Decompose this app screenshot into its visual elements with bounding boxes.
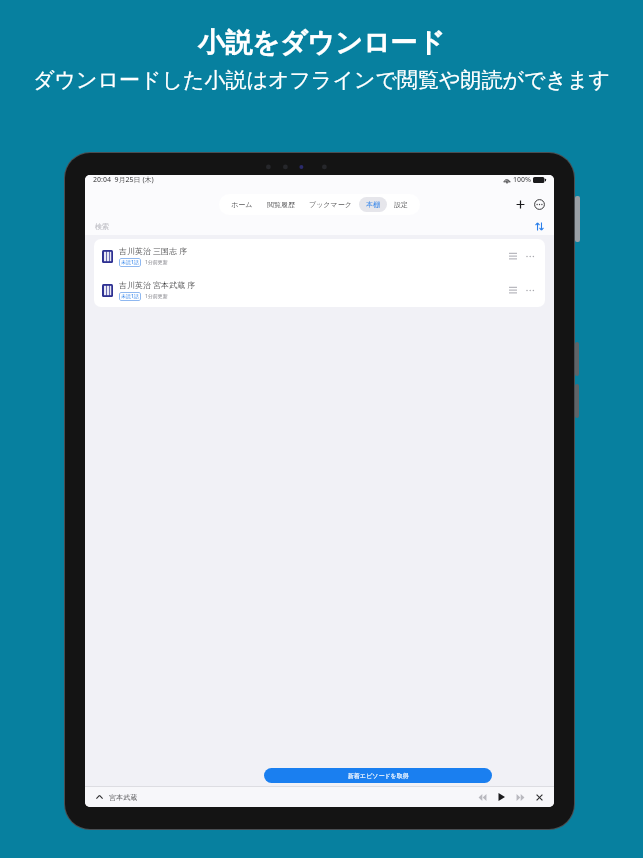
- button[interactable]: ホーム: [224, 197, 260, 212]
- staticText: 新着エピソードを取得: [348, 772, 409, 780]
- staticText: 吉川英治 宮本武蔵 序: [119, 279, 196, 290]
- button[interactable]: 新着エピソードを取得: [264, 768, 492, 783]
- staticText: 小説をダウンロード: [198, 26, 445, 60]
- button[interactable]: Play: [494, 790, 508, 804]
- staticText: 1分前更新: [145, 259, 168, 266]
- staticText: 検索: [95, 222, 109, 231]
- staticText: 宮本武蔵: [109, 793, 137, 802]
- staticText: ダウンロードした小説はオフラインで閲覧や朗読ができます: [33, 67, 610, 93]
- button[interactable]: 吉川英治 宮本武蔵 序: [94, 273, 545, 307]
- staticText: ブックマーク: [309, 200, 352, 209]
- button[interactable]: Item menu: [523, 283, 537, 297]
- button[interactable]: Fast forward: [513, 790, 527, 804]
- staticText: 未読1話: [121, 293, 139, 300]
- staticText: 設定: [394, 200, 408, 209]
- button[interactable]: Reorder: [506, 283, 520, 297]
- button[interactable]: 本棚: [359, 197, 387, 212]
- staticText: 20:04 9月25日 (木): [93, 175, 154, 185]
- button[interactable]: 設定: [387, 197, 415, 212]
- button[interactable]: Sort: [532, 219, 546, 233]
- button[interactable]: Expand player: [93, 791, 105, 803]
- staticText: 本棚: [366, 200, 380, 209]
- button[interactable]: More options: [531, 196, 547, 212]
- staticText: 閲覧履歴: [267, 200, 295, 209]
- button[interactable]: Reorder: [506, 249, 520, 263]
- button[interactable]: ブックマーク: [302, 197, 359, 212]
- button[interactable]: Rewind: [475, 790, 489, 804]
- staticText: 未読1話: [121, 259, 139, 266]
- button[interactable]: 閲覧履歴: [260, 197, 302, 212]
- button[interactable]: Close player: [532, 790, 546, 804]
- staticText: ホーム: [231, 200, 253, 209]
- button[interactable]: Add: [512, 196, 528, 212]
- button[interactable]: 吉川英治 三国志 序: [94, 239, 545, 273]
- staticText: 100%: [513, 175, 531, 185]
- button[interactable]: Item menu: [523, 249, 537, 263]
- staticText: 吉川英治 三国志 序: [119, 245, 188, 256]
- staticText: 1分前更新: [145, 293, 168, 300]
